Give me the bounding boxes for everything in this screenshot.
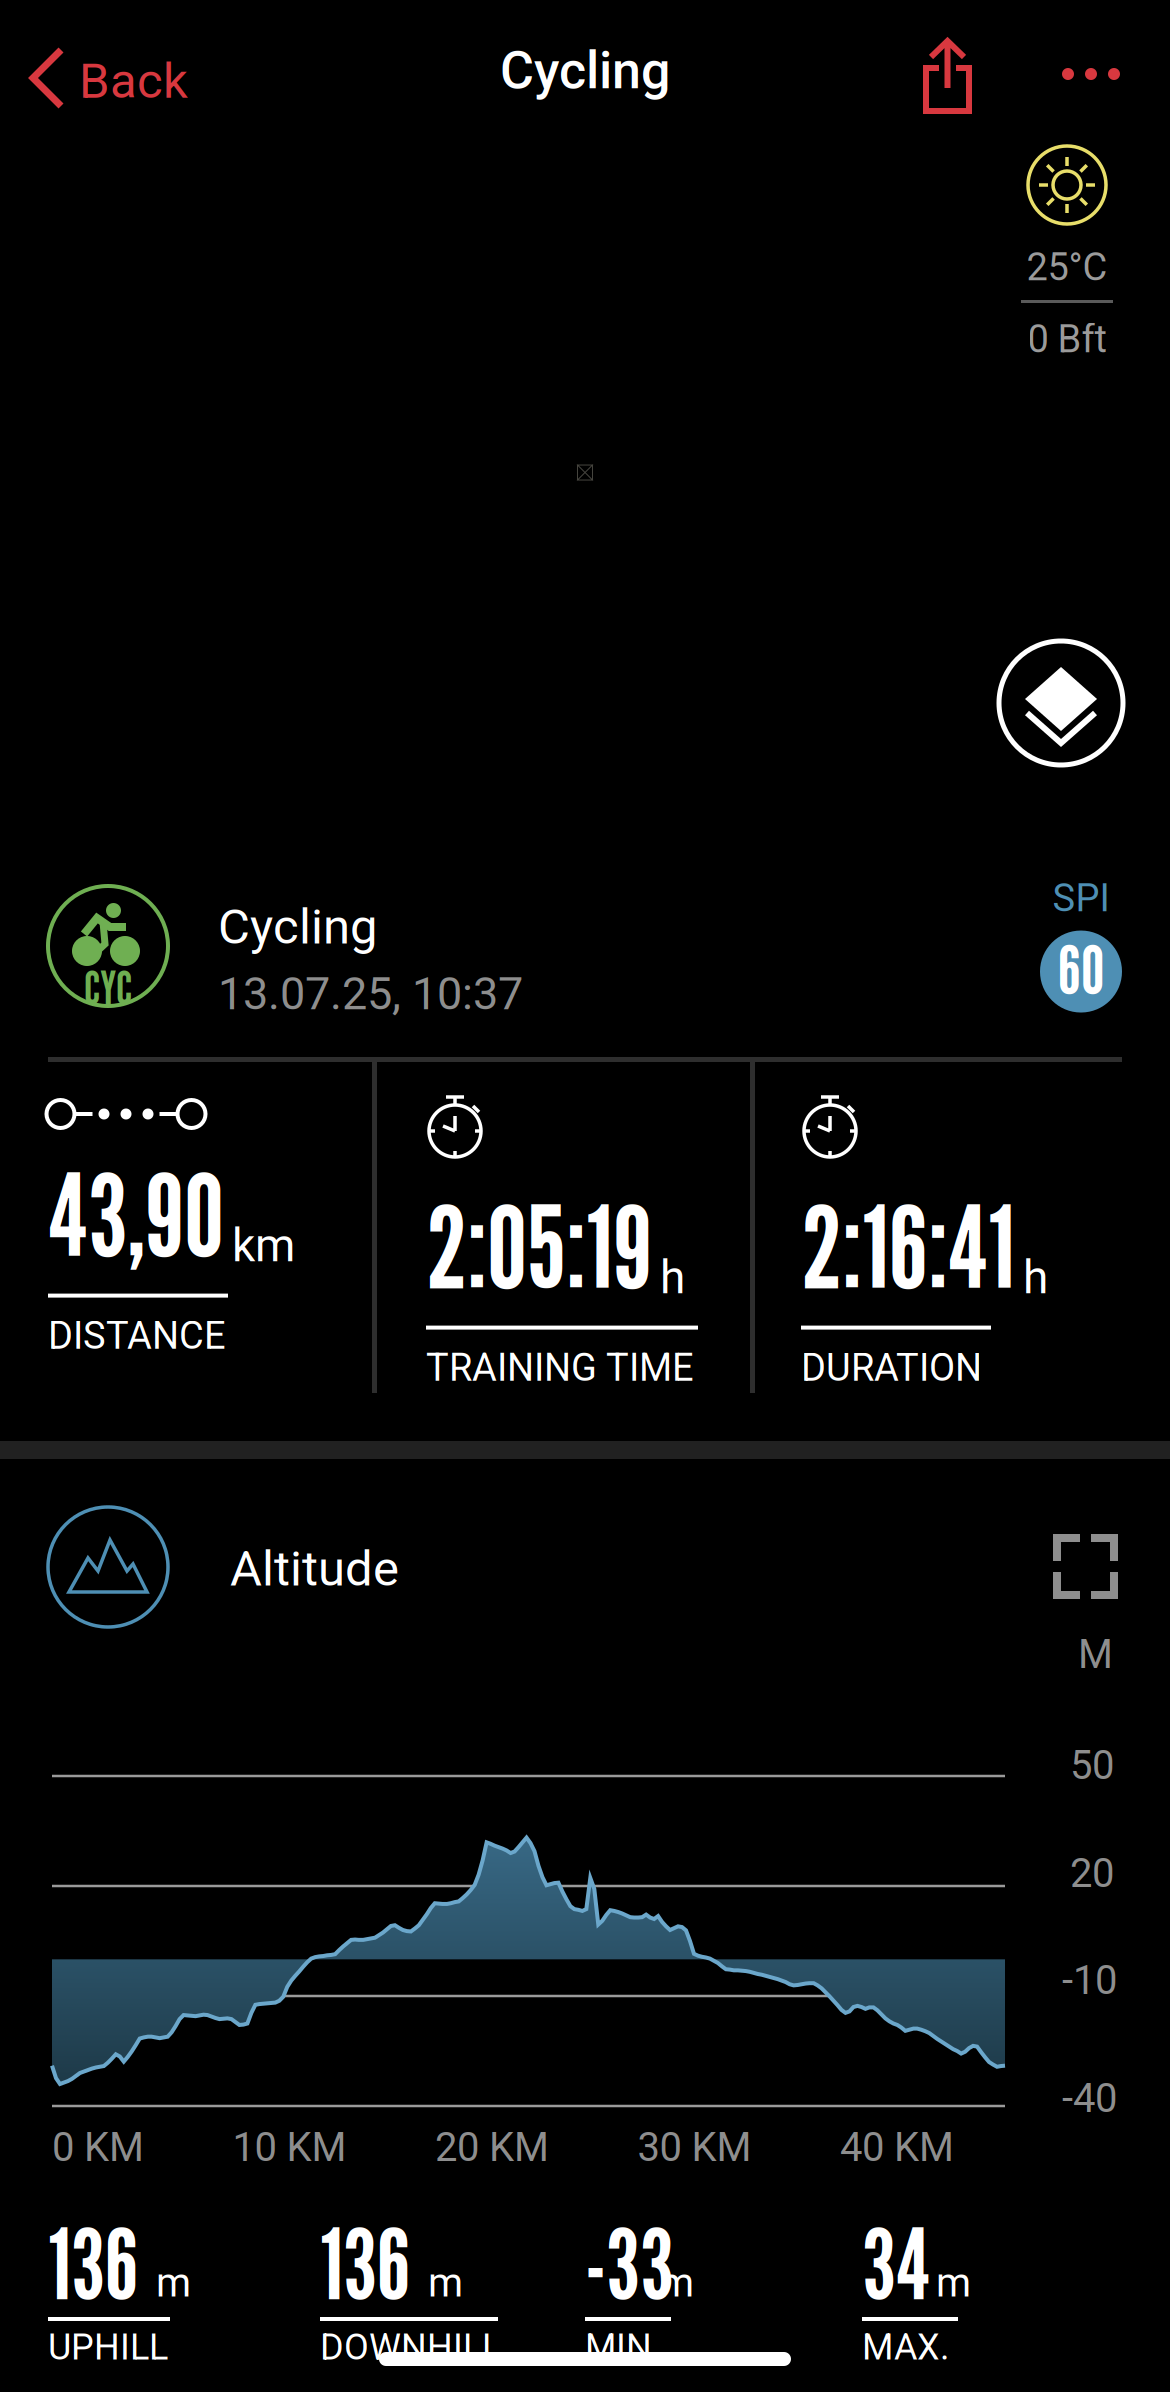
staticText: 20: [1070, 1850, 1114, 1897]
staticText: -40: [1062, 2075, 1117, 2122]
staticText: m: [936, 2259, 971, 2306]
staticText: UPHILL: [48, 2326, 168, 2368]
button[interactable]: Expand chart: [1053, 1534, 1118, 1599]
staticText: -33: [585, 2205, 674, 2322]
staticText: km: [232, 1219, 295, 1273]
staticText: m: [156, 2259, 191, 2306]
staticText: 0 Bft: [1027, 317, 1106, 361]
staticText: Cycling: [218, 898, 378, 955]
staticText: M: [1078, 1631, 1113, 1678]
staticText: MIN: [585, 2326, 652, 2368]
button[interactable]: Back: [9, 22, 208, 134]
staticText: 2:05:19: [426, 1178, 652, 1314]
staticText: 30 KM: [637, 2124, 751, 2171]
staticText: 40 KM: [840, 2124, 954, 2171]
button[interactable]: Map layers: [999, 641, 1123, 765]
staticText: CYC: [84, 960, 132, 1015]
staticText: Cycling: [500, 40, 670, 101]
staticText: 50: [1070, 1742, 1114, 1789]
staticText: 10 KM: [232, 2124, 346, 2171]
button[interactable]: Share: [902, 17, 993, 135]
staticText: 34: [862, 2205, 930, 2322]
staticText: DOWNHILL: [320, 2326, 501, 2368]
staticText: DURATION: [801, 1346, 982, 1390]
staticText: DISTANCE: [48, 1314, 226, 1358]
staticText: 25°C: [1026, 245, 1107, 289]
staticText: Back: [79, 52, 188, 110]
staticText: 13.07.25, 10:37: [218, 967, 523, 1020]
staticText: 43,90: [48, 1146, 224, 1282]
staticText: 60: [1058, 930, 1104, 1009]
staticText: SPI: [1052, 876, 1109, 920]
staticText: h: [1023, 1251, 1048, 1305]
staticText: m: [428, 2259, 463, 2306]
staticText: 0 KM: [52, 2124, 144, 2171]
staticText: 136: [48, 2205, 138, 2322]
staticText: h: [660, 1251, 685, 1305]
staticText: MAX.: [862, 2326, 949, 2368]
image: [577, 464, 593, 480]
staticText: 20 KM: [435, 2124, 549, 2171]
staticText: Altitude: [230, 1540, 399, 1597]
button[interactable]: More options: [1042, 48, 1140, 100]
staticText: m: [659, 2259, 694, 2306]
staticText: 136: [320, 2205, 410, 2322]
staticText: TRAINING TIME: [426, 1346, 694, 1390]
staticText: -10: [1062, 1957, 1117, 2004]
staticText: 2:16:41: [801, 1178, 1015, 1314]
